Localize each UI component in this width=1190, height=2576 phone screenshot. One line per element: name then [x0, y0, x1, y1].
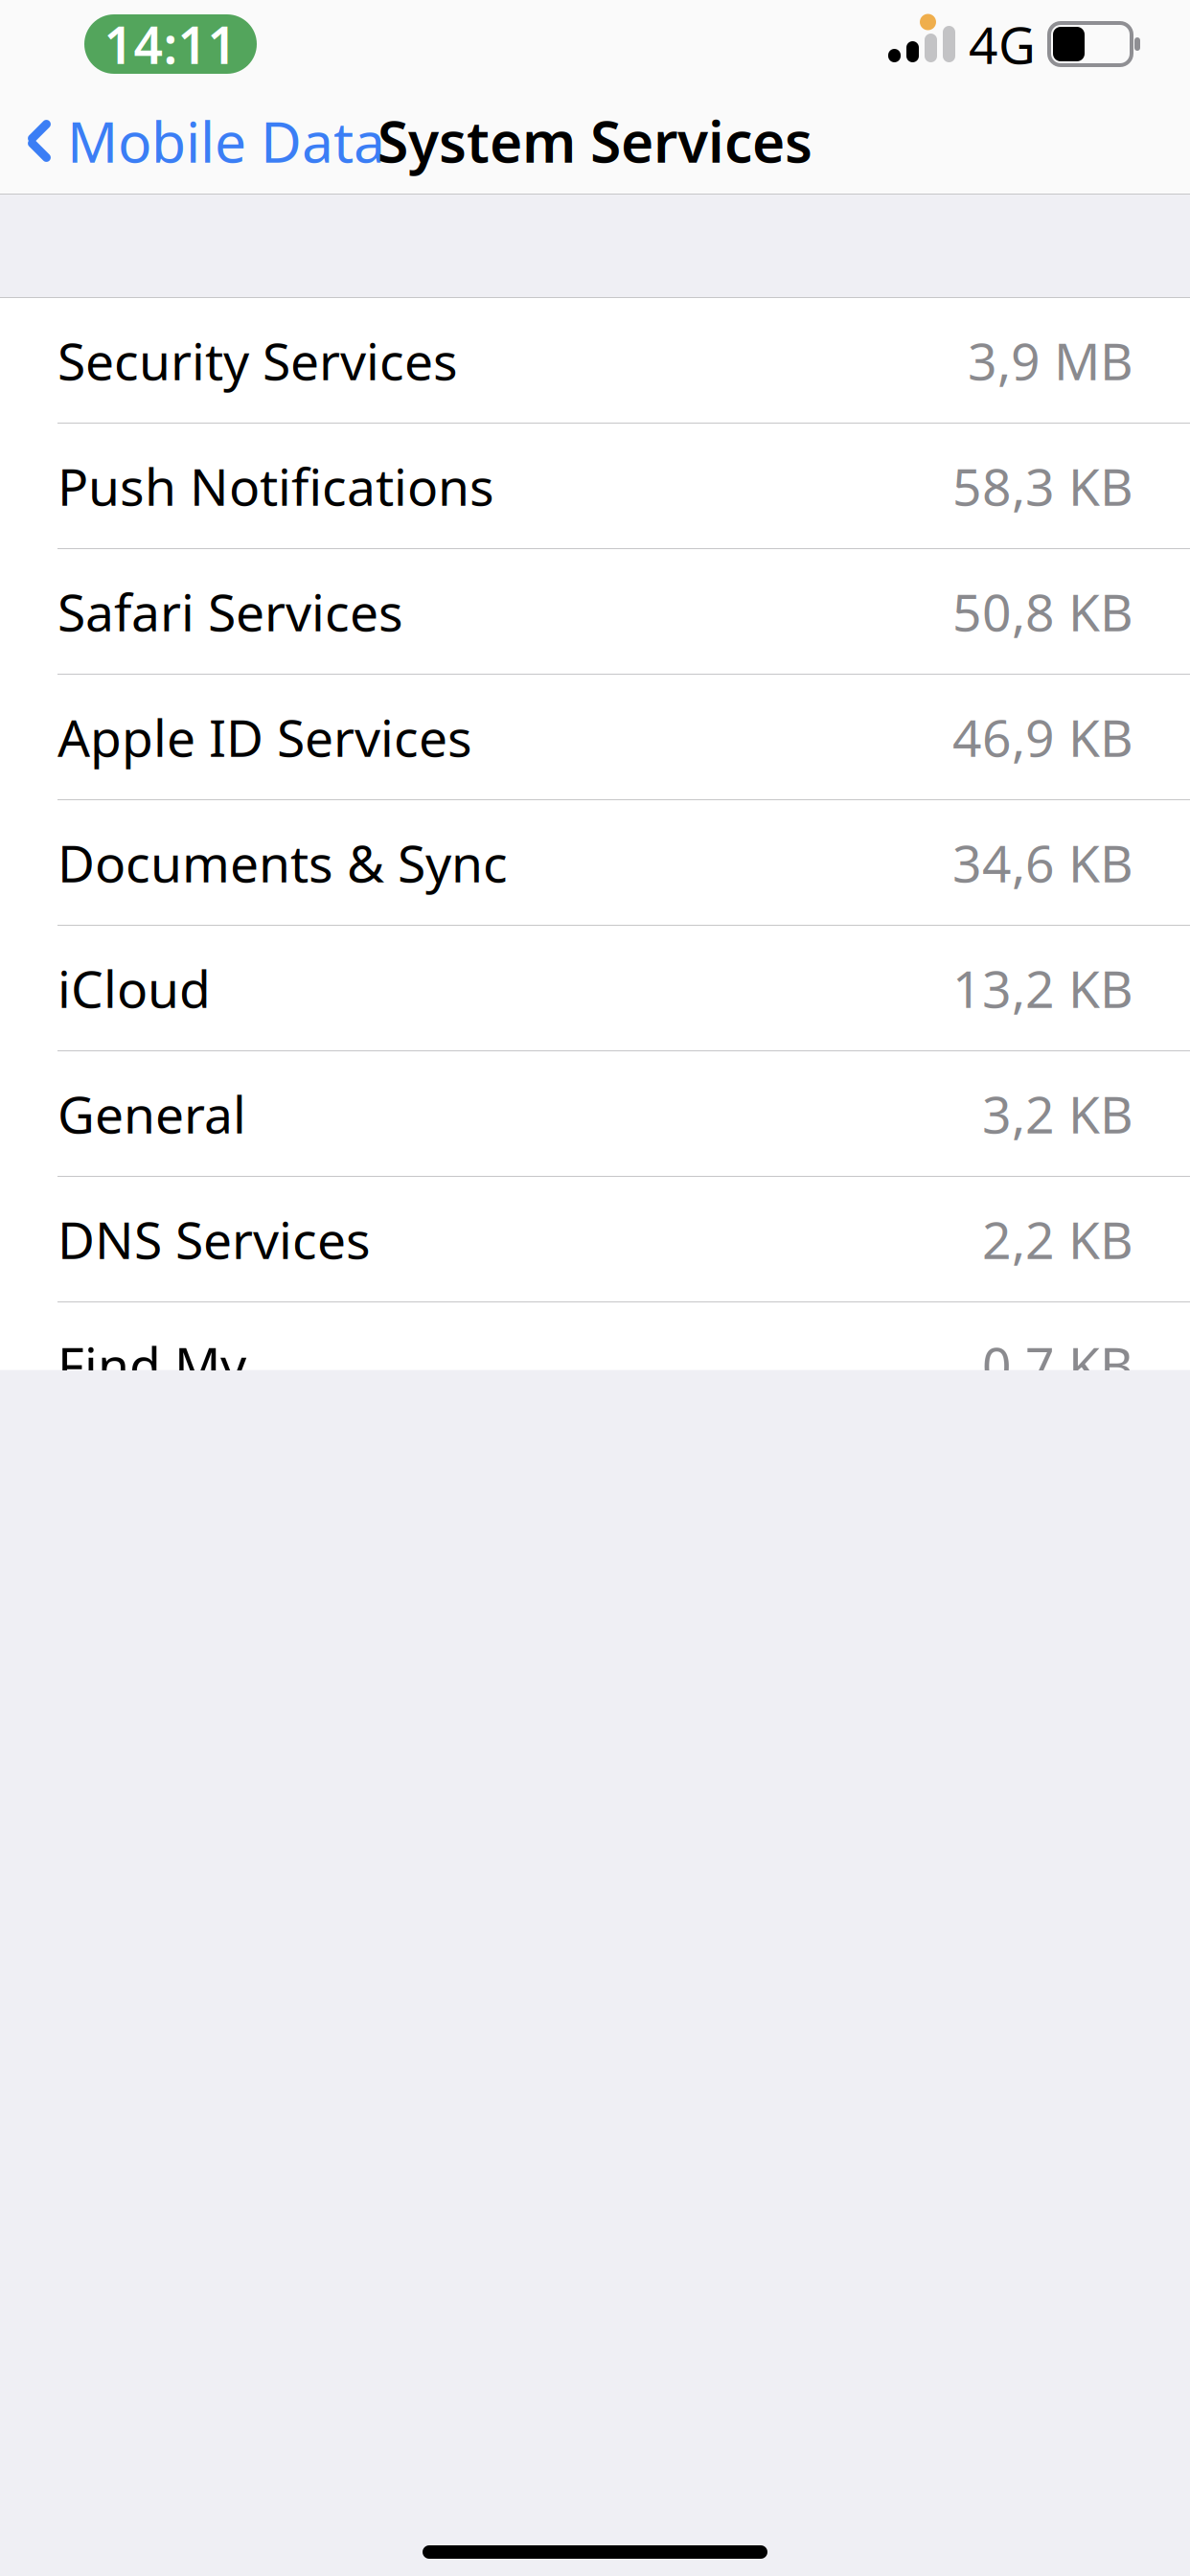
staticText: 34,6 KB — [952, 829, 1133, 896]
staticText: 3,9 MB — [968, 326, 1133, 394]
staticText: Mobile Data — [67, 103, 385, 178]
staticText: Push Notifications — [57, 452, 494, 520]
button[interactable]: General — [0, 1051, 1190, 1177]
staticText: 3,2 KB — [982, 1080, 1133, 1148]
staticText: 50,8 KB — [952, 577, 1133, 645]
button[interactable]: Safari Services — [0, 549, 1190, 675]
staticText: 46,9 KB — [952, 703, 1133, 771]
staticText: iCloud — [57, 954, 211, 1022]
button[interactable]: Documents & Sync — [0, 800, 1190, 926]
button[interactable]: Apple ID Services — [0, 675, 1190, 800]
staticText: 58,3 KB — [952, 452, 1133, 520]
staticText: Apple ID Services — [57, 703, 472, 771]
staticText: Documents & Sync — [57, 829, 508, 896]
staticText: 2,2 KB — [982, 1205, 1133, 1273]
button[interactable]: iCloud — [0, 926, 1190, 1051]
button[interactable]: Security Services — [0, 298, 1190, 424]
staticText: DNS Services — [57, 1205, 371, 1273]
staticText: General — [57, 1080, 246, 1148]
staticText: 4G — [969, 10, 1036, 78]
button[interactable]: Find My — [0, 1302, 1190, 1428]
staticText: 13,2 KB — [952, 954, 1133, 1022]
button[interactable]: Push Notifications — [0, 424, 1190, 549]
staticText: Find My — [57, 1331, 246, 1399]
staticText: System Services — [378, 103, 812, 178]
button[interactable]: Mobile Data — [0, 94, 385, 188]
staticText: 0,7 KB — [982, 1331, 1133, 1399]
staticText: Safari Services — [57, 577, 403, 645]
staticText: 14:11 — [104, 10, 237, 78]
staticText: Security Services — [57, 326, 458, 394]
button[interactable]: DNS Services — [0, 1177, 1190, 1302]
